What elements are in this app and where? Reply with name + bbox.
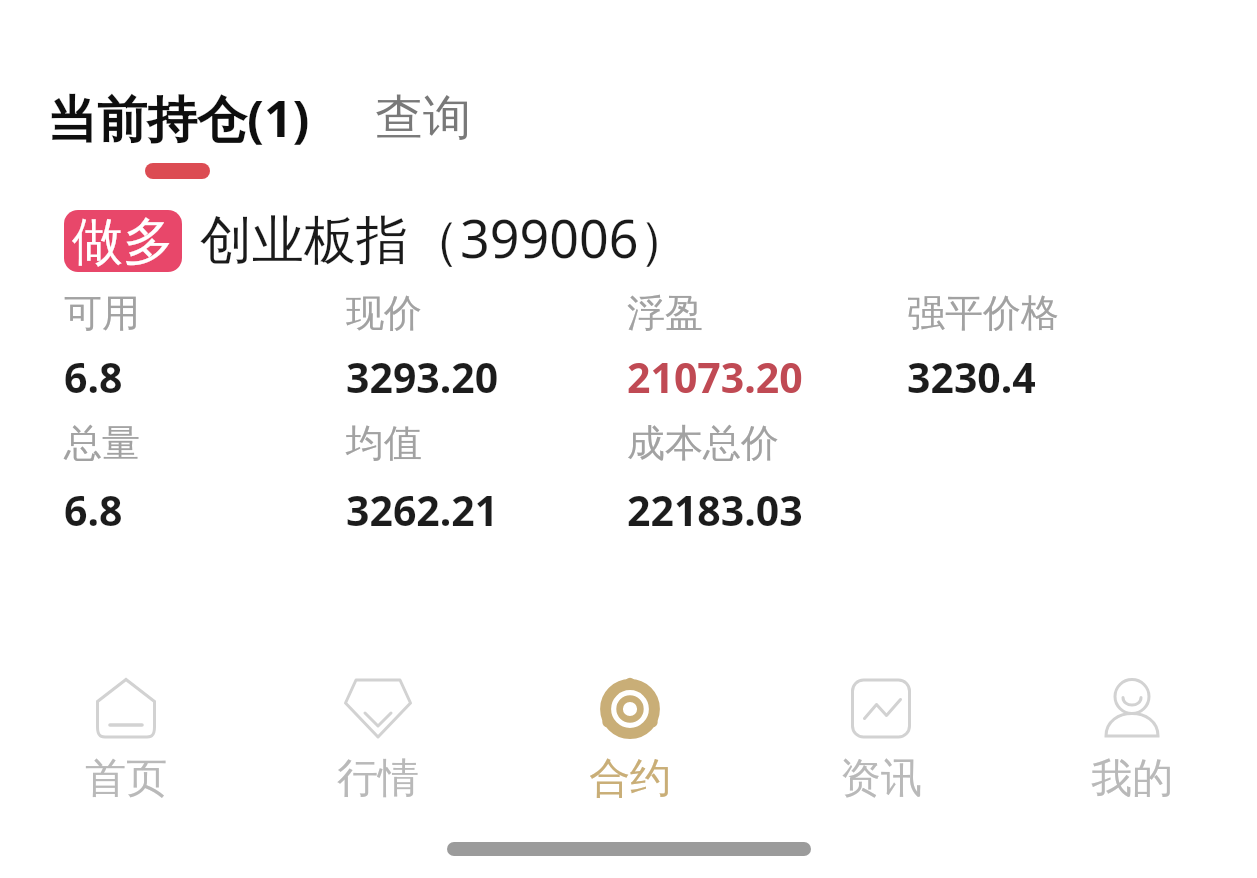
staticText: 3230.4 <box>907 349 1036 405</box>
staticText: 6.8 <box>64 349 123 405</box>
staticText: 总量 <box>64 419 140 467</box>
staticText: 现价 <box>346 289 422 337</box>
staticText: 可用 <box>64 289 140 337</box>
other: 我的 <box>1096 677 1168 739</box>
button[interactable]: 我的 <box>1006 677 1257 805</box>
other: 行情 <box>342 677 414 739</box>
staticText: 做多 <box>72 210 174 272</box>
button[interactable]: 行情 <box>252 677 504 805</box>
staticText: 当前持仓(1) <box>47 84 310 152</box>
staticText: 6.8 <box>64 482 123 538</box>
staticText: 首页 <box>85 753 167 805</box>
other: 首页 <box>90 677 162 739</box>
staticText: 我的 <box>1091 753 1173 805</box>
staticText: 资讯 <box>840 753 922 805</box>
staticText: 3293.20 <box>346 349 499 405</box>
button[interactable]: 首页 <box>0 677 252 805</box>
button[interactable]: 查询 <box>369 82 477 154</box>
staticText: 21073.20 <box>627 349 803 405</box>
staticText: 3262.21 <box>346 482 499 538</box>
other: 资讯 <box>845 677 917 739</box>
other: 合约 <box>594 677 666 739</box>
staticText: 均值 <box>346 419 422 467</box>
staticText: 成本总价 <box>627 419 779 467</box>
staticText: 22183.03 <box>627 482 803 538</box>
button[interactable]: 做多 <box>64 210 182 272</box>
staticText: 合约 <box>589 753 671 805</box>
staticText: 查询 <box>375 88 471 148</box>
staticText: 浮盈 <box>627 289 703 337</box>
button[interactable]: 当前持仓(1) <box>41 78 316 158</box>
staticText: 行情 <box>337 753 419 805</box>
button[interactable]: 合约 <box>504 677 755 805</box>
staticText: 强平价格 <box>907 289 1059 337</box>
staticText: 创业板指（399006） <box>200 202 691 273</box>
button[interactable]: 资讯 <box>755 677 1006 805</box>
